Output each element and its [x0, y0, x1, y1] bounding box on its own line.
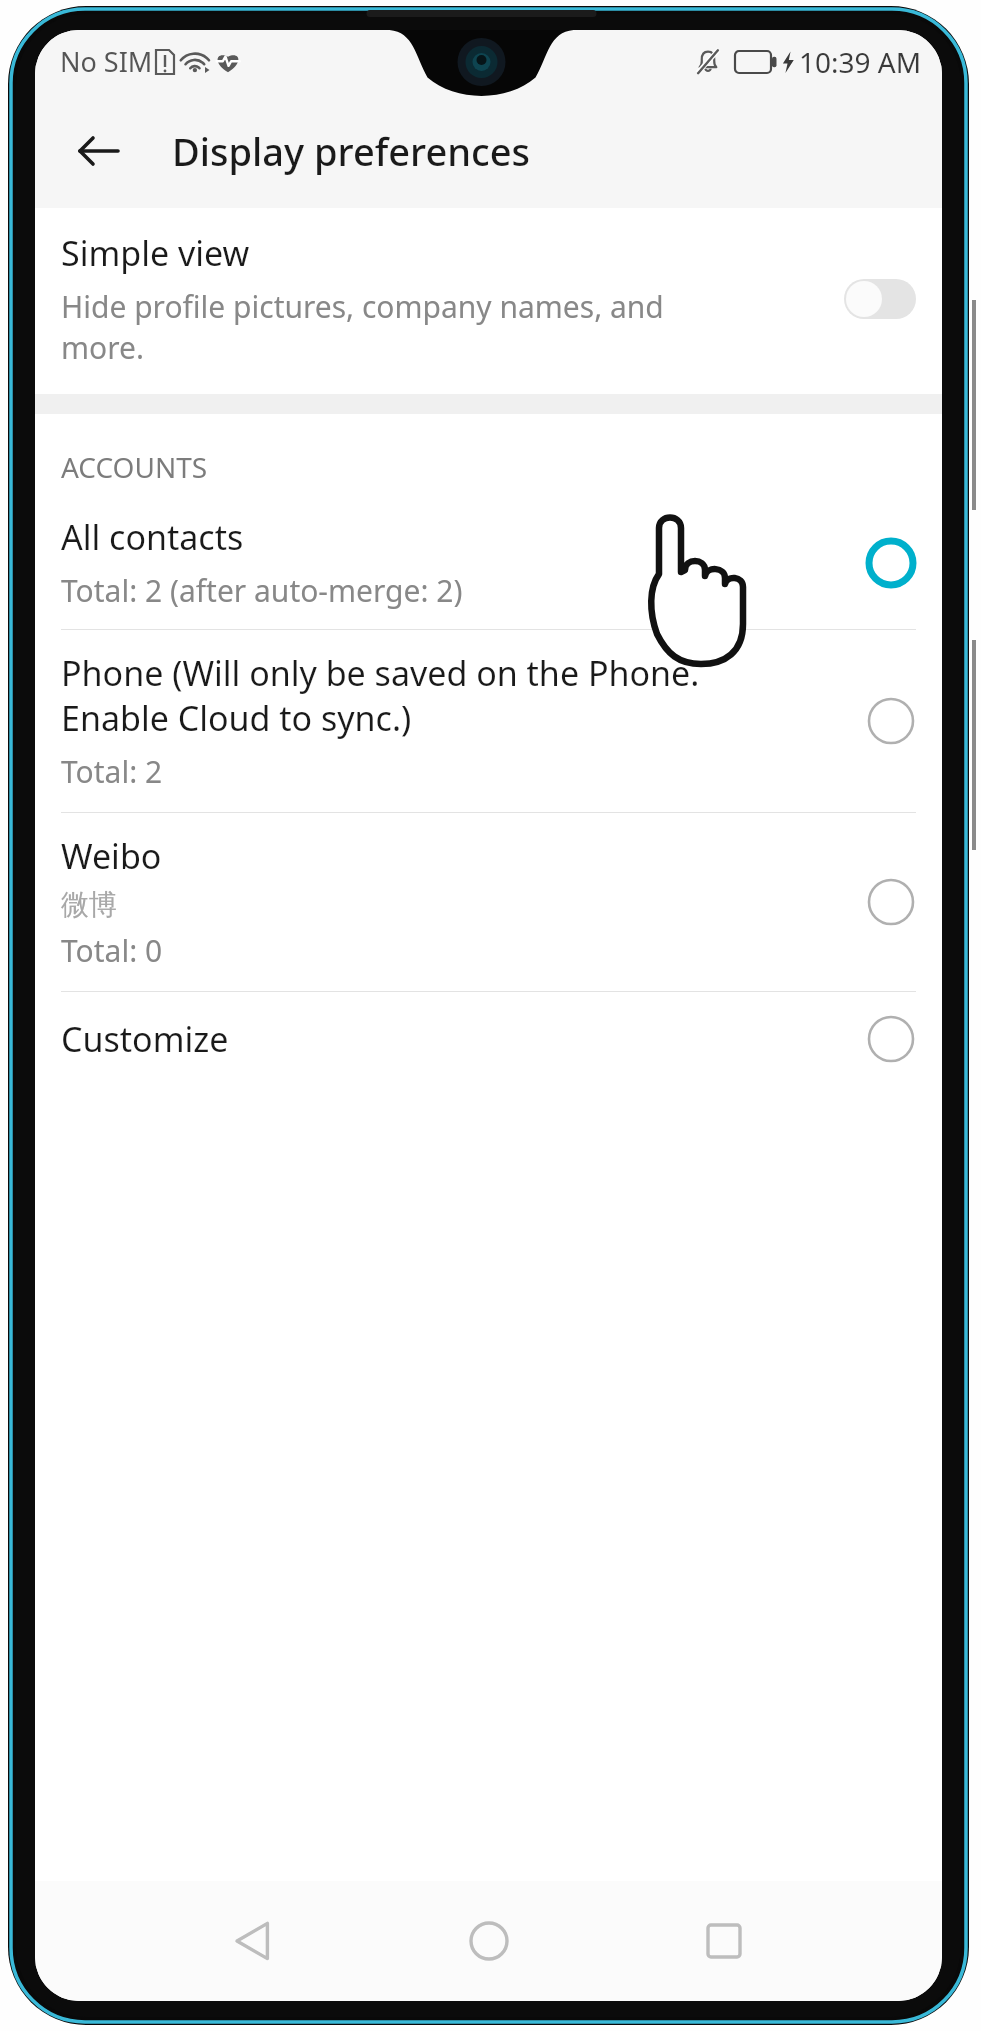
- staticText: Phone (Will only be saved on the Phone. …: [61, 650, 700, 741]
- staticText: Hide profile pictures, company names, an…: [61, 286, 664, 368]
- staticText: Total: 0: [61, 930, 163, 971]
- button[interactable]: Phone (Will only be saved on the Phone. …: [35, 630, 942, 813]
- button[interactable]: Recent apps: [676, 1893, 772, 1989]
- button[interactable]: Simple view toggle: [844, 279, 916, 319]
- staticText: No SIM: [60, 43, 153, 80]
- staticText: Customize: [61, 1016, 229, 1062]
- button[interactable]: All contacts: [35, 496, 942, 630]
- staticText: Simple view: [61, 230, 250, 276]
- staticText: 微博: [61, 887, 117, 922]
- button[interactable]: Back: [205, 1893, 301, 1989]
- staticText: All contacts: [61, 514, 244, 560]
- staticText: Total: 2: [61, 751, 163, 792]
- staticText: Display preferences: [172, 125, 530, 177]
- staticText: Total: 2 (after auto-merge: 2): [61, 570, 463, 611]
- button[interactable]: Back: [71, 123, 127, 179]
- button[interactable]: Customize: [35, 992, 942, 1086]
- button[interactable]: Simple view: [35, 208, 942, 394]
- button[interactable]: Home: [441, 1893, 537, 1989]
- button[interactable]: Weibo: [35, 813, 942, 992]
- staticText: Weibo: [61, 833, 162, 879]
- staticText: ACCOUNTS: [61, 448, 208, 486]
- staticText: 10:39 AM: [799, 43, 922, 81]
